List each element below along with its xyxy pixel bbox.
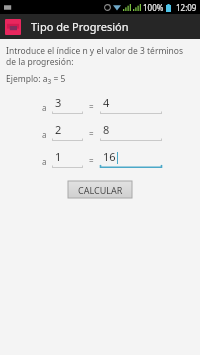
staticText: Tipo de Progresión	[31, 19, 129, 34]
staticText: CALCULAR	[78, 184, 123, 196]
staticText: =	[89, 155, 94, 166]
button[interactable]: Campo de entrada 1	[52, 149, 83, 168]
staticText: Ejemplo: a3 = 5	[6, 73, 66, 86]
button[interactable]: Campo de entrada 8	[100, 122, 162, 141]
staticText: 4	[103, 95, 110, 110]
staticText: 1	[55, 149, 62, 164]
staticText: 16	[103, 149, 116, 164]
button[interactable]: Campo de entrada 4	[100, 95, 162, 114]
staticText: Introduce el índice n y el valor de 3 té…	[6, 45, 192, 67]
staticText: a	[42, 156, 47, 167]
staticText: 100%	[143, 2, 164, 13]
staticText: 8	[103, 122, 110, 137]
button[interactable]: Campo de entrada 2	[52, 122, 83, 141]
staticText: a	[42, 129, 47, 140]
staticText: a	[42, 102, 47, 113]
button[interactable]: CALCULAR	[68, 181, 132, 198]
staticText: 2	[55, 122, 62, 137]
button[interactable]: Campo de entrada 16	[100, 149, 162, 168]
staticText: =	[89, 128, 94, 139]
button[interactable]: Campo de entrada 3	[52, 95, 83, 114]
staticText: 3	[55, 95, 62, 110]
staticText: =	[89, 101, 94, 112]
staticText: 12:09	[176, 2, 197, 13]
button[interactable]: App icon	[5, 19, 21, 35]
